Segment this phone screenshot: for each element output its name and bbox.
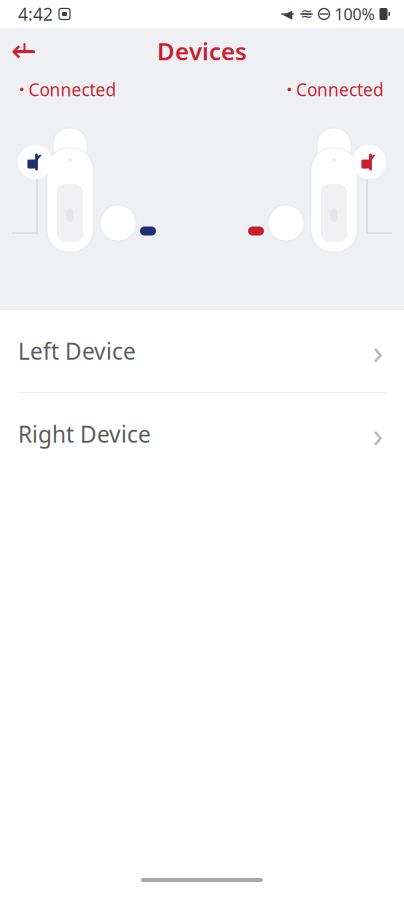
staticText: Left Device (18, 336, 136, 366)
staticText: › (372, 328, 383, 374)
staticText: ≋ (300, 6, 312, 22)
staticText: › (372, 411, 383, 457)
staticText: ← (11, 34, 37, 68)
staticText: Devices (157, 35, 247, 67)
staticText: 100% (334, 3, 374, 25)
staticText: ✓ (358, 148, 379, 176)
staticText: Right Device (18, 419, 151, 449)
staticText: Connected (296, 78, 384, 101)
button[interactable]: Left Device (0, 310, 404, 392)
button[interactable]: Right Device (0, 393, 404, 475)
staticText: 4:42 (18, 2, 53, 25)
staticText: ◀ (283, 7, 292, 21)
staticText: ✓ (24, 148, 45, 176)
button[interactable]: Back (0, 29, 48, 73)
staticText: Connected (28, 78, 116, 101)
